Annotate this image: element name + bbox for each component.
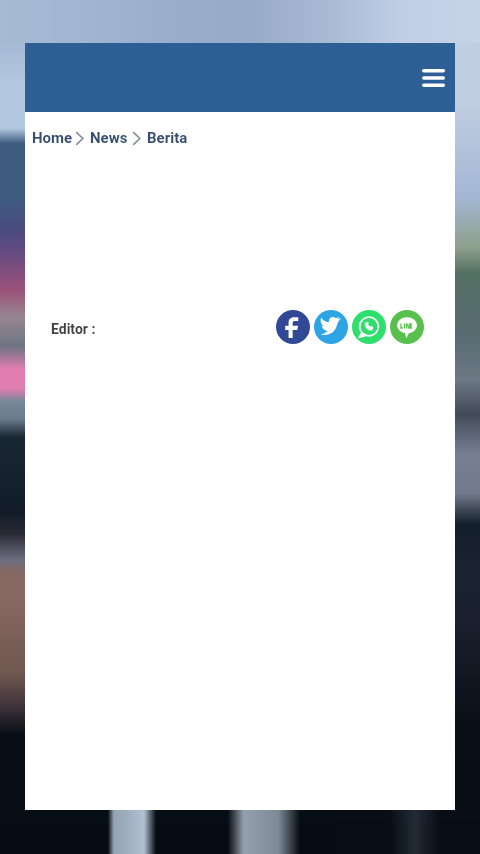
button[interactable]: Home [31,127,74,149]
button[interactable]: Share on LINE [390,310,424,344]
staticText: Editor : [51,321,96,337]
button[interactable]: Share on Facebook [276,310,310,344]
button[interactable]: News [89,127,129,149]
staticText: Home [32,129,73,147]
button[interactable]: Share on WhatsApp [352,310,386,344]
button[interactable]: Berita [146,127,189,149]
staticText: News [90,129,128,147]
staticText: Berita [147,129,188,147]
button[interactable]: Share on Twitter [314,310,348,344]
button[interactable]: Menu [416,61,450,95]
